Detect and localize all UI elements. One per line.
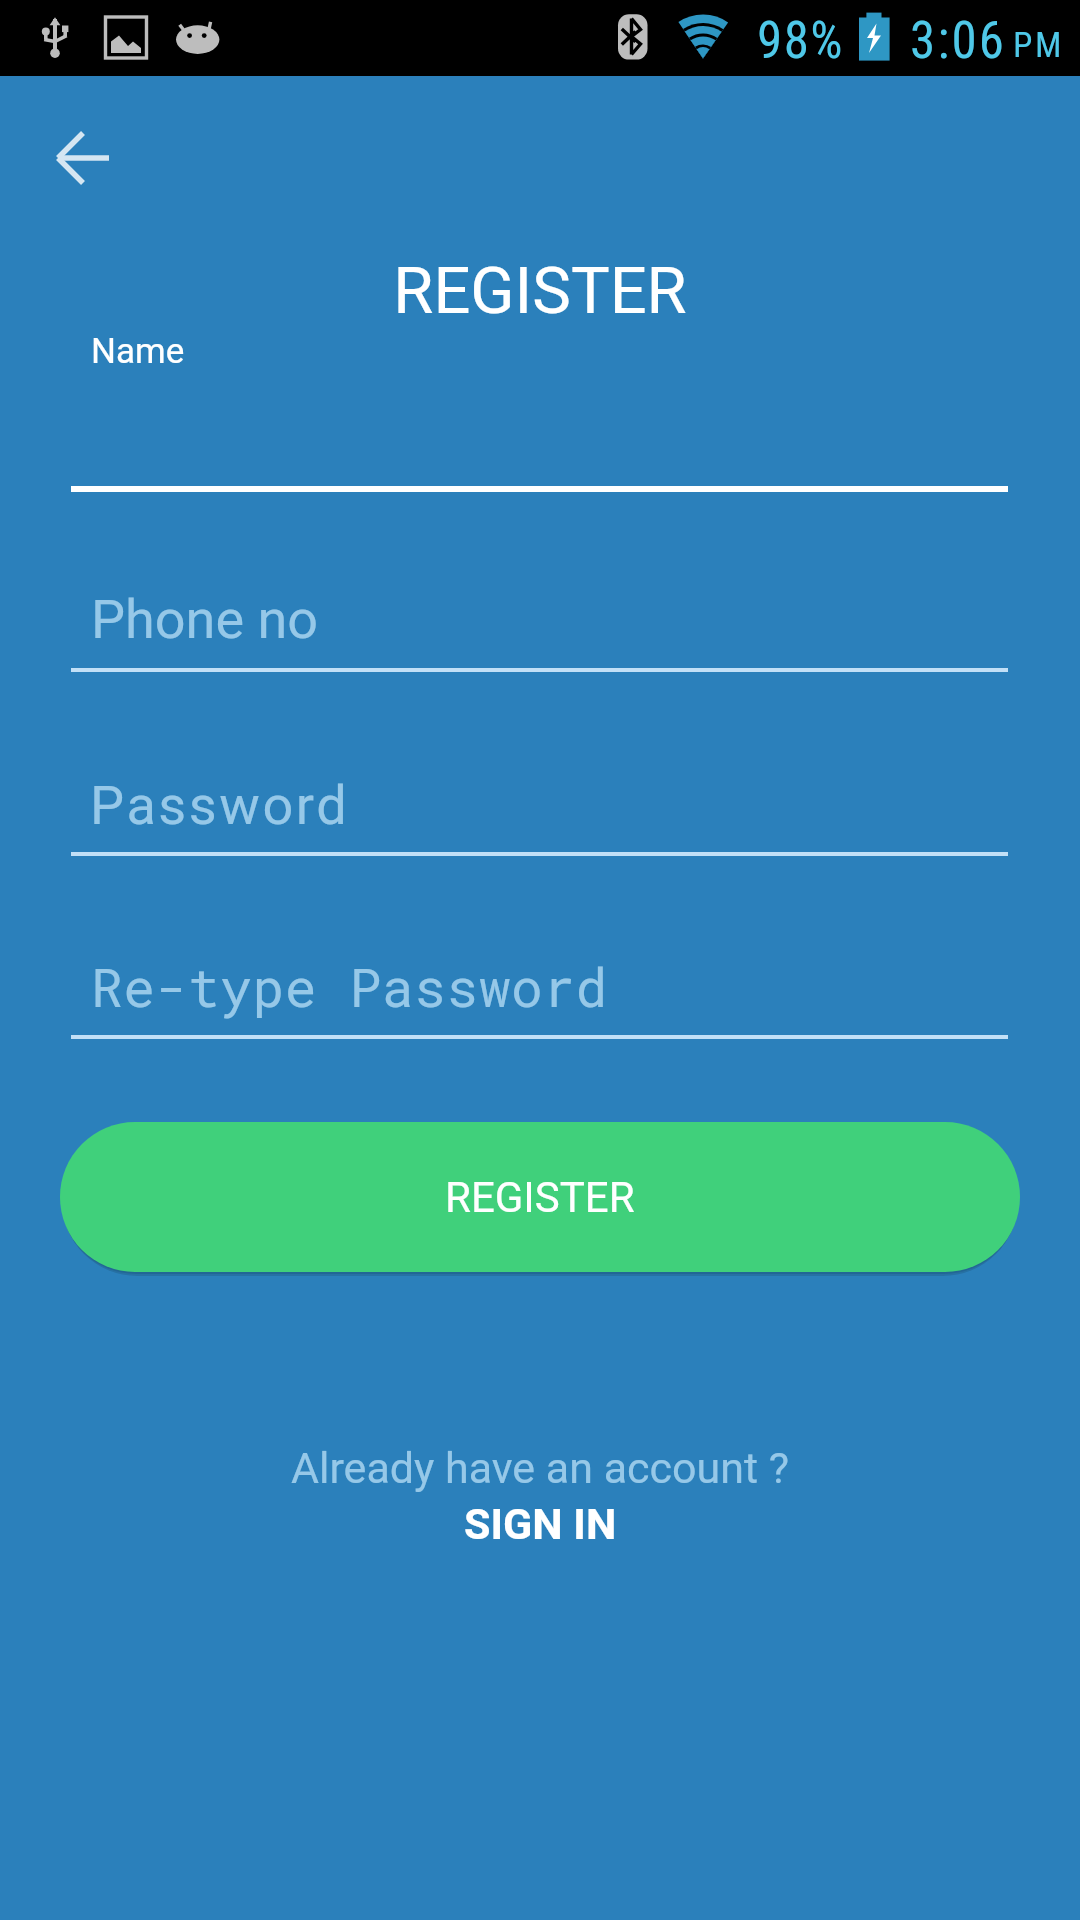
staticText: SIGN IN: [464, 1499, 617, 1549]
button[interactable]: SIGN IN: [400, 1496, 680, 1552]
staticText: Re-type Password: [91, 951, 608, 1021]
staticText: PM: [1013, 25, 1064, 66]
staticText: Already have an account ?: [0, 1443, 1080, 1493]
staticText: Phone no: [91, 588, 319, 651]
staticText: REGISTER: [0, 253, 1080, 329]
staticText: REGISTER: [445, 1173, 635, 1222]
button[interactable]: REGISTER: [60, 1122, 1020, 1272]
staticText: 3:06: [910, 11, 1007, 71]
staticText: 98%: [757, 11, 845, 71]
button[interactable]: Back: [36, 122, 124, 194]
staticText: Password: [90, 774, 350, 837]
staticText: Name: [91, 331, 185, 372]
